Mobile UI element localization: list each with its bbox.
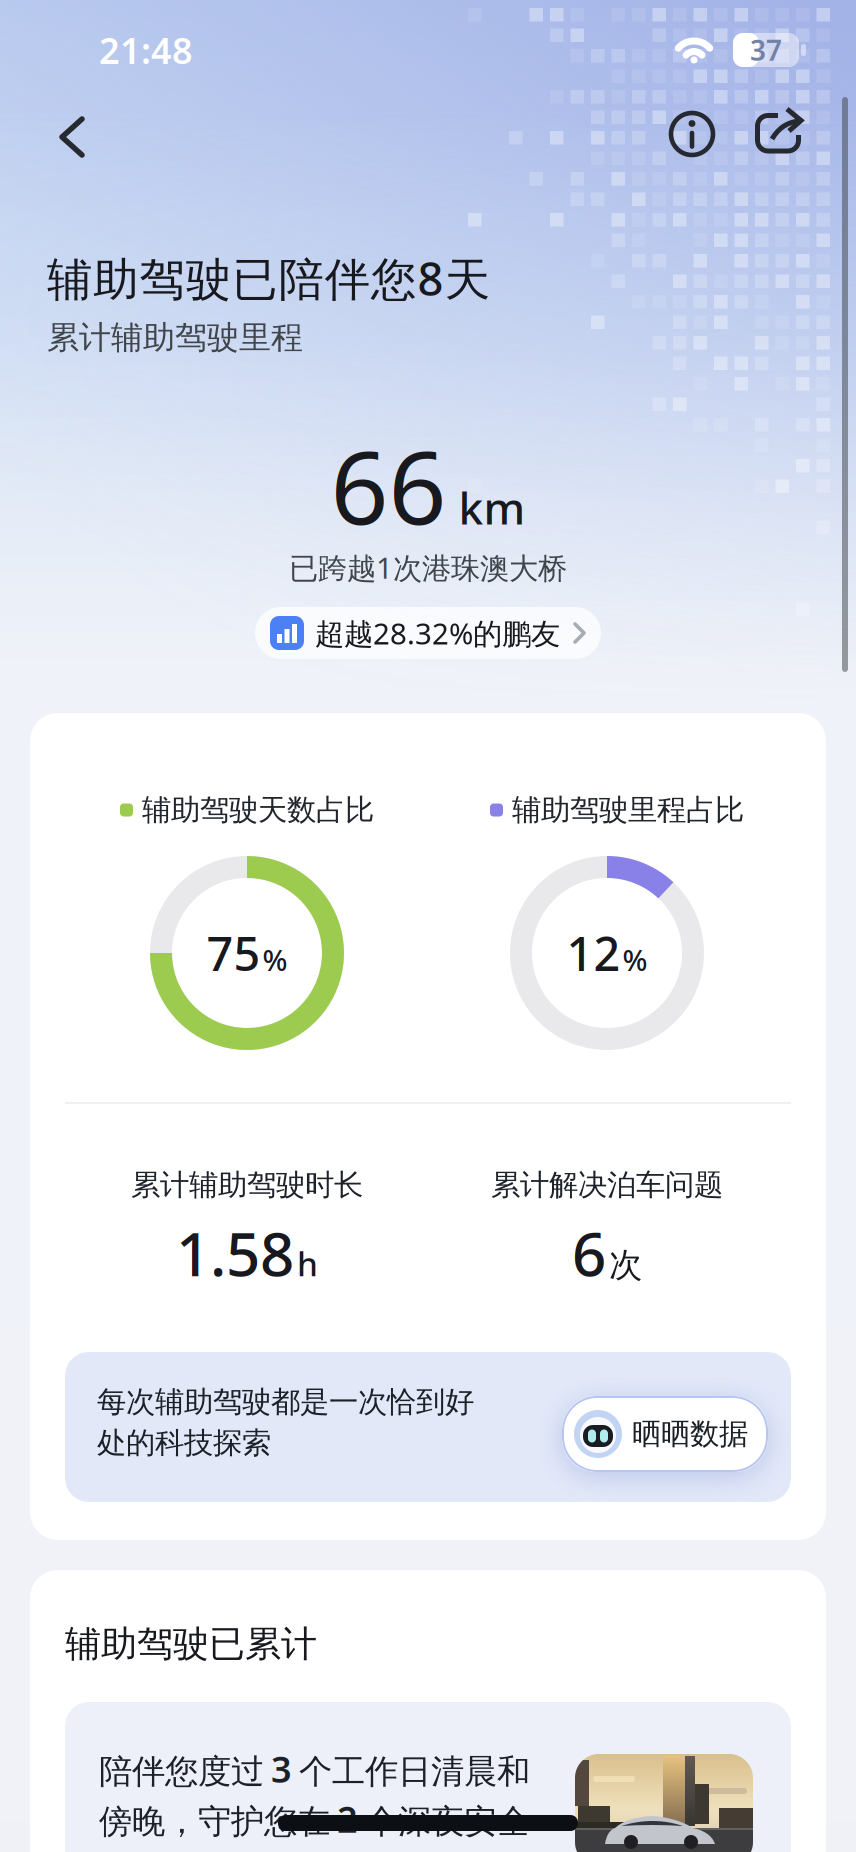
- staticText: %: [262, 940, 287, 979]
- staticText: 累计辅助驾驶时长: [131, 1167, 363, 1203]
- staticText: h: [297, 1241, 318, 1285]
- staticText: 辅助驾驶已陪伴您8天: [47, 248, 490, 308]
- button[interactable]: Info: [0, 0, 856, 200]
- staticText: 辅助驾驶里程占比: [512, 792, 744, 828]
- staticText: 37: [750, 31, 782, 69]
- button[interactable]: 晒晒数据: [562, 1396, 768, 1472]
- button[interactable]: 超越28.32%的鹏友: [255, 607, 601, 659]
- staticText: 辅助驾驶已累计: [65, 1622, 317, 1666]
- staticText: 个工作日清晨和: [299, 1751, 530, 1792]
- staticText: 3: [271, 1745, 292, 1793]
- staticText: %: [622, 940, 647, 979]
- staticText: 傍晚，守护您在: [99, 1801, 330, 1842]
- staticText: 累计辅助驾驶里程: [47, 318, 303, 357]
- staticText: 75: [206, 922, 260, 984]
- staticText: 1.58: [176, 1213, 294, 1293]
- staticText: km: [458, 478, 525, 537]
- staticText: 晒晒数据: [632, 1416, 748, 1452]
- staticText: 2: [337, 1795, 358, 1843]
- staticText: 处的科技探索: [97, 1425, 271, 1461]
- staticText: 辅助驾驶天数占比: [142, 792, 374, 828]
- staticText: 累计解决泊车问题: [491, 1167, 723, 1203]
- staticText: 12: [566, 922, 620, 984]
- staticText: 次: [609, 1245, 642, 1286]
- button[interactable]: Back: [0, 0, 120, 200]
- button[interactable]: Share: [0, 0, 856, 200]
- staticText: 超越28.32%的鹏友: [315, 613, 560, 652]
- staticText: 个深夜安全: [365, 1801, 530, 1842]
- staticText: 陪伴您度过: [99, 1751, 264, 1792]
- staticText: 每次辅助驾驶都是一次恰到好: [97, 1384, 474, 1420]
- staticText: 6: [572, 1213, 606, 1293]
- staticText: 66: [330, 418, 446, 553]
- staticText: 21:48: [99, 26, 193, 74]
- staticText: 已跨越1次港珠澳大桥: [289, 548, 567, 587]
